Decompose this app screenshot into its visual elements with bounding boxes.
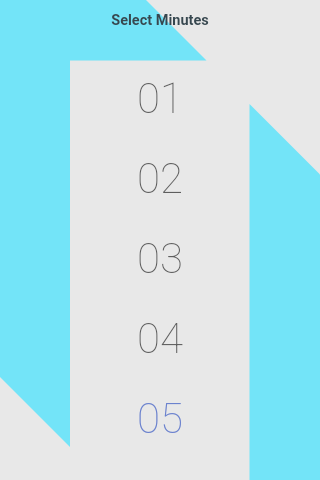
button[interactable]: 04: [0, 314, 320, 366]
staticText: Select Minutes: [0, 12, 320, 29]
button[interactable]: 05: [0, 394, 320, 446]
button[interactable]: 03: [0, 234, 320, 286]
button[interactable]: 01: [0, 74, 320, 126]
button[interactable]: 02: [0, 154, 320, 206]
